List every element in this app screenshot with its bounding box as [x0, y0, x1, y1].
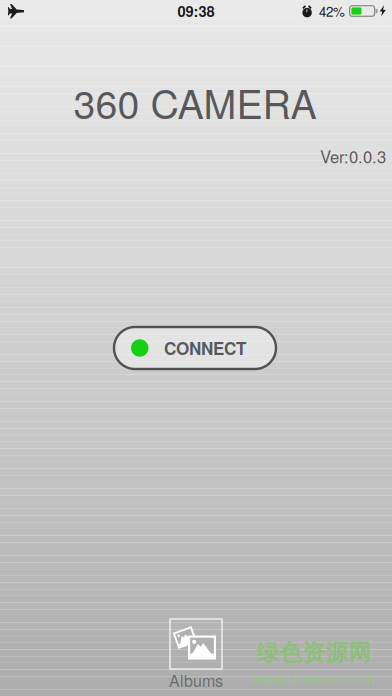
button[interactable]: CONNECT — [114, 327, 276, 369]
staticText: 42% — [319, 1, 345, 21]
staticText: www.downcc.com — [252, 667, 375, 689]
staticText: 360 CAMERA — [73, 74, 316, 130]
staticText: 绿色资源网 — [256, 639, 371, 667]
button[interactable]: Albums — [142, 618, 250, 696]
staticText: Albums — [169, 668, 223, 691]
staticText: 09:38 — [177, 0, 214, 21]
staticText: CONNECT — [164, 336, 246, 360]
staticText: Ver:0.0.3 — [320, 144, 386, 168]
